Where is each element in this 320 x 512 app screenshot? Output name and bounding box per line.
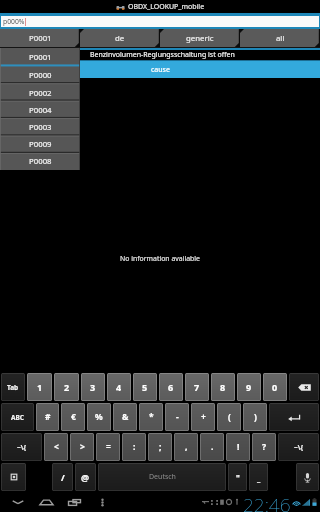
staticText: < (54, 441, 59, 453)
staticText: 9 (246, 381, 252, 393)
button[interactable]: 5 (133, 373, 157, 401)
staticText: & (122, 411, 129, 423)
button[interactable]: - (165, 403, 189, 431)
button[interactable]: = (96, 433, 120, 461)
staticText: _ (257, 472, 261, 483)
staticText: 7 (194, 381, 200, 393)
staticText: ~\{ (17, 443, 26, 452)
button[interactable]: 0 (263, 373, 287, 401)
staticText: " (236, 472, 240, 483)
button[interactable]: P0009 (0, 136, 80, 153)
staticText: generic (186, 33, 214, 44)
button[interactable]: ) (243, 403, 267, 431)
staticText: ! (237, 441, 240, 453)
button[interactable]: P0002 (0, 84, 80, 102)
button[interactable]: Hide keyboard (4, 492, 32, 512)
staticText: 6 (168, 381, 174, 393)
button[interactable]: @ (75, 463, 96, 491)
button[interactable]: ! (226, 433, 250, 461)
staticText: 1 (37, 381, 43, 393)
button[interactable]: P0003 (0, 119, 80, 136)
button[interactable]: 6 (159, 373, 183, 401)
staticText: . (211, 441, 214, 453)
button[interactable]: + (191, 403, 215, 431)
button[interactable]: < (44, 433, 68, 461)
staticText: 5 (142, 381, 148, 393)
staticText: P0001 (29, 52, 52, 63)
staticText: 2 (64, 381, 70, 393)
button[interactable]: Tab (1, 373, 25, 401)
button[interactable]: # (36, 403, 59, 431)
staticText: p000% (3, 17, 25, 26)
staticText: - (176, 411, 179, 423)
button[interactable]: ~\{ (1, 433, 42, 461)
button[interactable]: ABC (1, 403, 34, 431)
button[interactable]: cause (0, 61, 320, 78)
button[interactable]: ; (148, 433, 172, 461)
staticText: P0009 (29, 139, 52, 150)
button[interactable]: Backspace (289, 373, 319, 401)
button[interactable]: 4 (107, 373, 131, 401)
button[interactable]: Deutsch (98, 463, 226, 491)
button[interactable]: Home (32, 492, 60, 512)
button[interactable]: P0000 (0, 66, 80, 84)
button[interactable]: de (80, 29, 160, 47)
button[interactable]: , (174, 433, 198, 461)
button[interactable]: 3 (81, 373, 105, 401)
button[interactable]: Enter (269, 403, 319, 431)
staticText: ( (228, 411, 231, 423)
staticText: Deutsch (149, 472, 176, 482)
button[interactable]: P0004 (0, 102, 80, 119)
button[interactable]: More options (88, 492, 116, 512)
staticText: Tab (7, 383, 19, 392)
button[interactable]: _ (249, 463, 268, 491)
staticText: ; (159, 441, 162, 453)
button[interactable]: ( (217, 403, 241, 431)
button[interactable]: " (228, 463, 247, 491)
staticText: ABC (11, 413, 24, 422)
staticText: P0001 (29, 33, 52, 44)
staticText: OBDX_LOOKUP_mobile (128, 2, 205, 12)
button[interactable]: % (87, 403, 111, 431)
staticText: Benzinvolumen-Reglungsschaltung ist offe… (90, 50, 235, 60)
button[interactable]: Recent apps (60, 492, 88, 512)
staticText: 8 (220, 381, 226, 393)
button[interactable]: ~\{ (278, 433, 319, 461)
staticText: No information available (120, 254, 200, 263)
button[interactable]: 9 (237, 373, 261, 401)
staticText: # (45, 411, 51, 423)
button[interactable]: 7 (185, 373, 209, 401)
button[interactable]: € (61, 403, 85, 431)
staticText: P0000 (29, 70, 52, 81)
button[interactable]: 8 (211, 373, 235, 401)
staticText: / (61, 471, 65, 483)
staticText: 4 (116, 381, 122, 393)
staticText: ) (254, 411, 257, 423)
button[interactable]: Input method (1, 463, 26, 491)
button[interactable]: generic (160, 29, 240, 47)
button[interactable]: Voice input (296, 463, 319, 491)
staticText: P0003 (29, 122, 52, 133)
button[interactable]: P0001 (0, 29, 80, 47)
staticText: de (115, 33, 125, 44)
staticText: % (95, 411, 103, 423)
button[interactable]: * (139, 403, 163, 431)
button[interactable]: & (113, 403, 137, 431)
staticText: 22:46 (243, 492, 291, 512)
staticText: + (201, 411, 206, 423)
button[interactable]: ? (252, 433, 276, 461)
staticText: 0 (272, 381, 278, 393)
staticText: all (276, 33, 285, 44)
button[interactable]: all (240, 29, 320, 47)
button[interactable]: > (70, 433, 94, 461)
button[interactable]: P0001 (0, 48, 80, 66)
button[interactable]: . (200, 433, 224, 461)
button[interactable]: / (52, 463, 73, 491)
button[interactable]: 1 (27, 373, 52, 401)
button[interactable]: P0008 (0, 153, 80, 170)
staticText: P0008 (29, 156, 52, 167)
button[interactable]: : (122, 433, 146, 461)
button[interactable]: p000% (1, 16, 319, 27)
staticText: P0004 (29, 105, 52, 116)
button[interactable]: 2 (54, 373, 79, 401)
